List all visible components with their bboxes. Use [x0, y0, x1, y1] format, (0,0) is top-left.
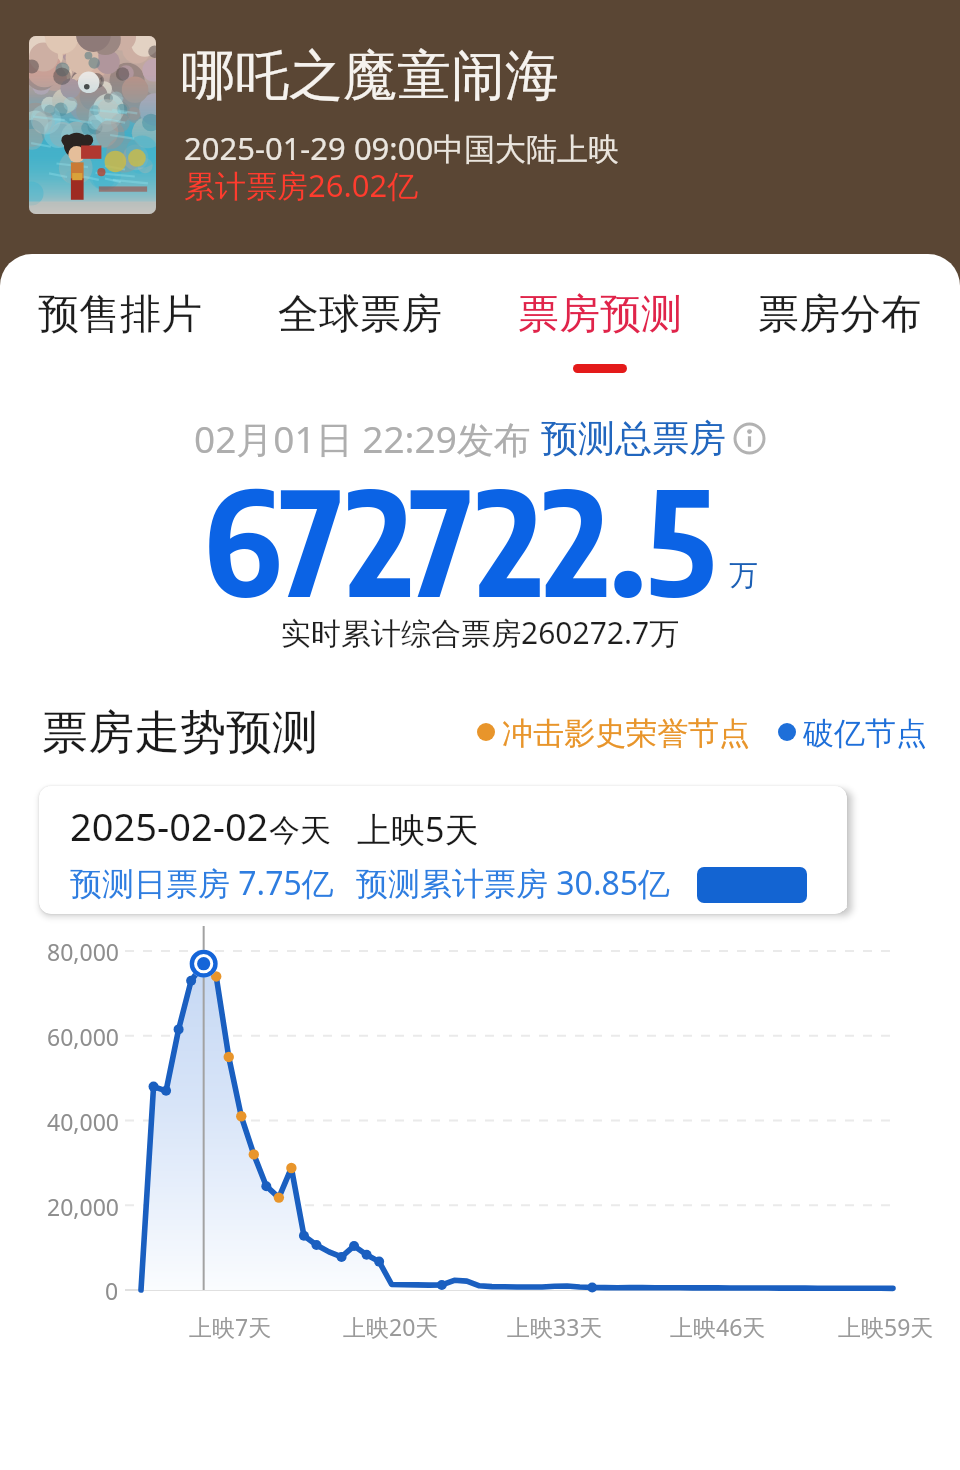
- button[interactable]: 票房预测: [480, 254, 720, 382]
- staticText: 上映46天: [670, 1311, 766, 1342]
- staticText: 40,000: [47, 1106, 119, 1137]
- staticText: 2025-02-02: [70, 800, 269, 852]
- button[interactable]: 冲击影史荣誉节点: [477, 714, 750, 750]
- staticText: 票房走势预测: [42, 704, 318, 762]
- button[interactable]: 票房分布: [720, 254, 960, 382]
- staticText: 预测日票房 7.75亿: [70, 861, 334, 905]
- staticText: 672722.5: [203, 450, 716, 629]
- staticText: 全球票房: [278, 289, 442, 341]
- button[interactable]: 全球票房: [240, 254, 480, 382]
- staticText: 02月01日 22:29发布: [194, 413, 541, 464]
- button[interactable]: Movie poster: [29, 36, 156, 214]
- staticText: 哪吒之魔童闹海: [181, 42, 559, 110]
- staticText: 累计票房26.02亿: [184, 164, 419, 206]
- staticText: 上映7天: [189, 1311, 272, 1342]
- staticText: 上映5天: [357, 806, 479, 852]
- staticText: 80,000: [47, 936, 119, 967]
- staticText: 上映20天: [343, 1311, 439, 1342]
- staticText: 实时累计综合票房260272.7万: [281, 612, 680, 653]
- staticText: 60,000: [47, 1021, 119, 1052]
- staticText: 预测总票房: [541, 415, 726, 462]
- staticText: 上映59天: [838, 1311, 934, 1342]
- staticText: 预测累计票房 30.85亿: [356, 861, 671, 905]
- staticText: 预售排片: [38, 289, 202, 341]
- button[interactable]: 2025-02-02: [39, 786, 847, 914]
- staticText: 破亿节点: [803, 714, 927, 750]
- staticText: 0: [105, 1275, 119, 1306]
- staticText: 20,000: [47, 1191, 119, 1222]
- button[interactable]: 破亿节点: [778, 714, 927, 750]
- staticText: 票房分布: [758, 289, 922, 341]
- button[interactable]: 预售排片: [0, 254, 240, 382]
- staticText: 万: [729, 557, 758, 594]
- staticText: 上映33天: [507, 1311, 603, 1342]
- staticText: 今天: [269, 811, 331, 850]
- staticText: 票房预测: [518, 289, 682, 341]
- staticText: 冲击影史荣誉节点: [502, 714, 750, 750]
- staticText: 2025-01-29 09:00中国大陆上映: [184, 127, 620, 169]
